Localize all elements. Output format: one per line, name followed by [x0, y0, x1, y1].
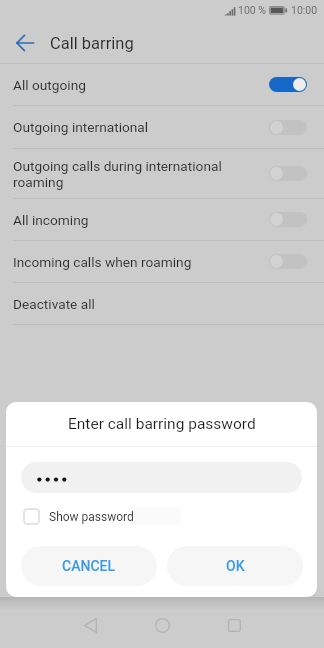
- button[interactable]: Recents: [214, 605, 254, 645]
- staticText: Outgoing calls during international roam…: [13, 158, 263, 190]
- button[interactable]: Switch off: [269, 212, 307, 227]
- staticText: 10:00: [291, 4, 318, 16]
- staticText: 100 %: [238, 4, 266, 16]
- button[interactable]: Back: [70, 605, 110, 645]
- button[interactable]: Back: [10, 28, 40, 58]
- staticText: Call barring: [50, 34, 134, 53]
- staticText: Show password: [49, 510, 134, 524]
- staticText: All outgoing: [13, 77, 263, 93]
- staticText: OK: [226, 558, 245, 574]
- button[interactable]: Switch off: [269, 166, 307, 181]
- button[interactable]: All incoming: [0, 199, 324, 240]
- button[interactable]: All outgoing: [0, 64, 324, 105]
- button[interactable]: Switch on: [269, 77, 307, 92]
- staticText: Incoming calls when roaming: [13, 254, 263, 270]
- button[interactable]: CANCEL: [21, 546, 157, 586]
- button[interactable]: Deactivate all: [0, 283, 324, 324]
- button[interactable]: Show password: [23, 506, 134, 527]
- button[interactable]: Password field: [21, 462, 302, 493]
- button[interactable]: OK: [167, 546, 303, 586]
- staticText: Deactivate all: [13, 296, 95, 312]
- button[interactable]: Outgoing international: [0, 106, 324, 148]
- staticText: Enter call barring password: [68, 415, 256, 433]
- button[interactable]: Switch off: [269, 120, 307, 135]
- button[interactable]: Switch off: [269, 254, 307, 269]
- button[interactable]: Incoming calls when roaming: [0, 241, 324, 282]
- staticText: All incoming: [13, 212, 263, 228]
- button[interactable]: Outgoing calls during international roam…: [0, 149, 324, 198]
- staticText: Outgoing international: [13, 119, 263, 135]
- staticText: CANCEL: [62, 558, 116, 574]
- button[interactable]: Home: [142, 605, 182, 645]
